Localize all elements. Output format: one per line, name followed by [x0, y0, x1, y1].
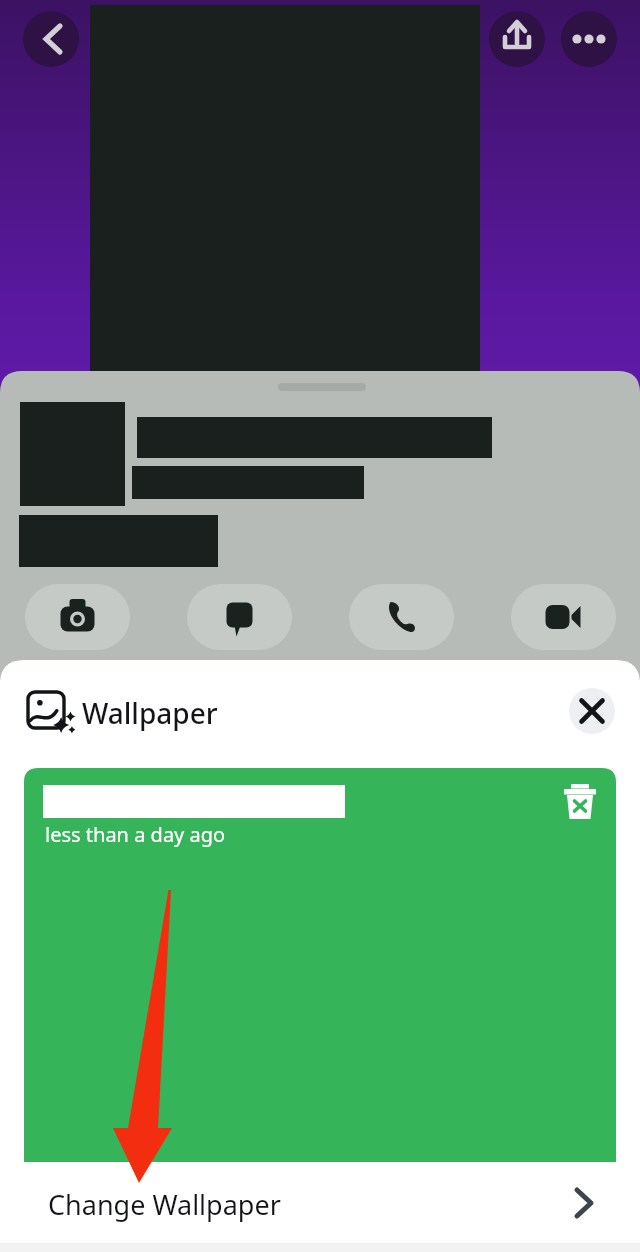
button[interactable]: Back: [23, 11, 79, 67]
button[interactable]: More options: [561, 11, 617, 67]
button[interactable]: [20, 1165, 620, 1241]
staticText: Wallpaper: [82, 694, 218, 732]
button[interactable]: Message: [187, 584, 292, 650]
button[interactable]: Close: [569, 688, 615, 734]
button[interactable]: Call: [349, 584, 454, 650]
button[interactable]: Camera: [25, 584, 130, 650]
button[interactable]: [24, 768, 616, 1162]
button[interactable]: Share: [489, 11, 545, 67]
button[interactable]: Delete wallpaper: [556, 778, 604, 826]
staticText: less than a day ago: [45, 821, 226, 848]
button[interactable]: Video call: [511, 584, 616, 650]
staticText: Change Wallpaper: [48, 1186, 281, 1223]
